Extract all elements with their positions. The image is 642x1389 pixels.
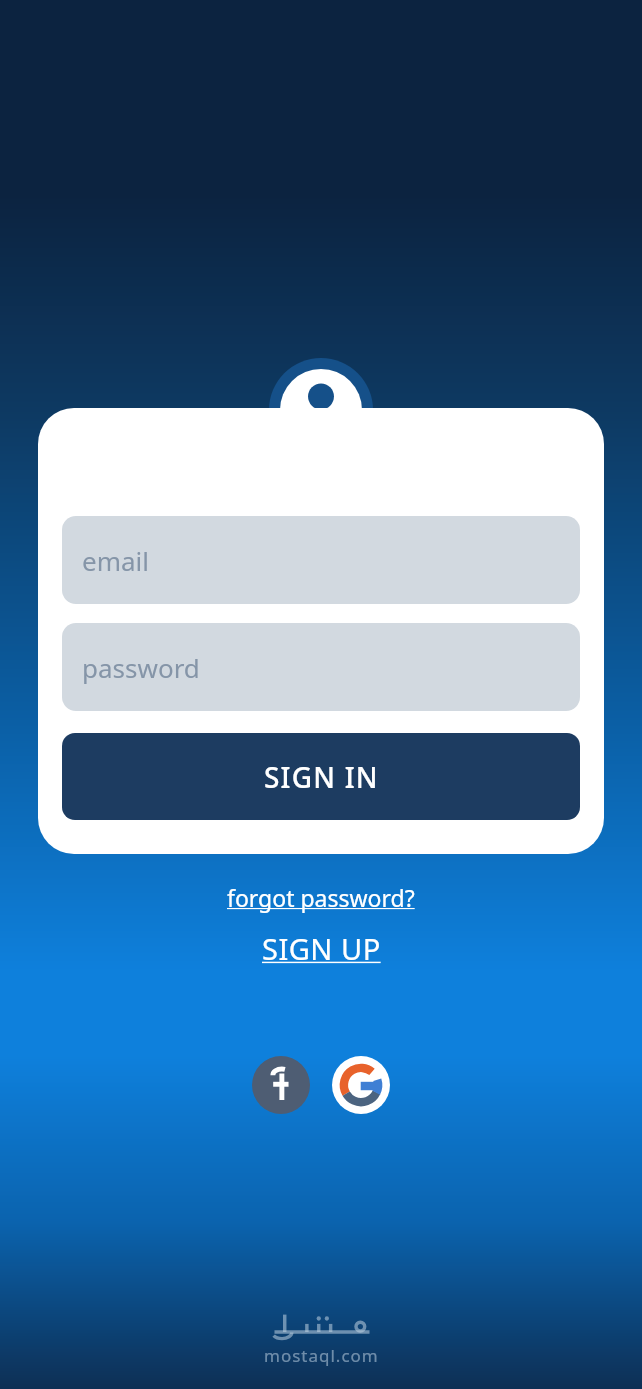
button[interactable]: SIGN UP bbox=[254, 925, 389, 972]
staticText: password bbox=[82, 650, 200, 685]
button[interactable]: password bbox=[62, 623, 580, 711]
staticText: SIGN IN bbox=[264, 758, 379, 796]
staticText: forgot password? bbox=[227, 882, 415, 913]
button[interactable]: Sign in with Google bbox=[332, 1056, 390, 1114]
other: Profile avatar bbox=[269, 358, 373, 462]
button[interactable]: Sign in with Facebook bbox=[252, 1056, 310, 1114]
staticText: SIGN UP bbox=[262, 929, 381, 968]
button[interactable]: SIGN IN bbox=[62, 733, 580, 820]
button[interactable]: forgot password? bbox=[219, 878, 423, 917]
staticText: mostaql.com bbox=[264, 1344, 379, 1367]
button[interactable]: email bbox=[62, 516, 580, 604]
staticText: email bbox=[82, 543, 149, 578]
